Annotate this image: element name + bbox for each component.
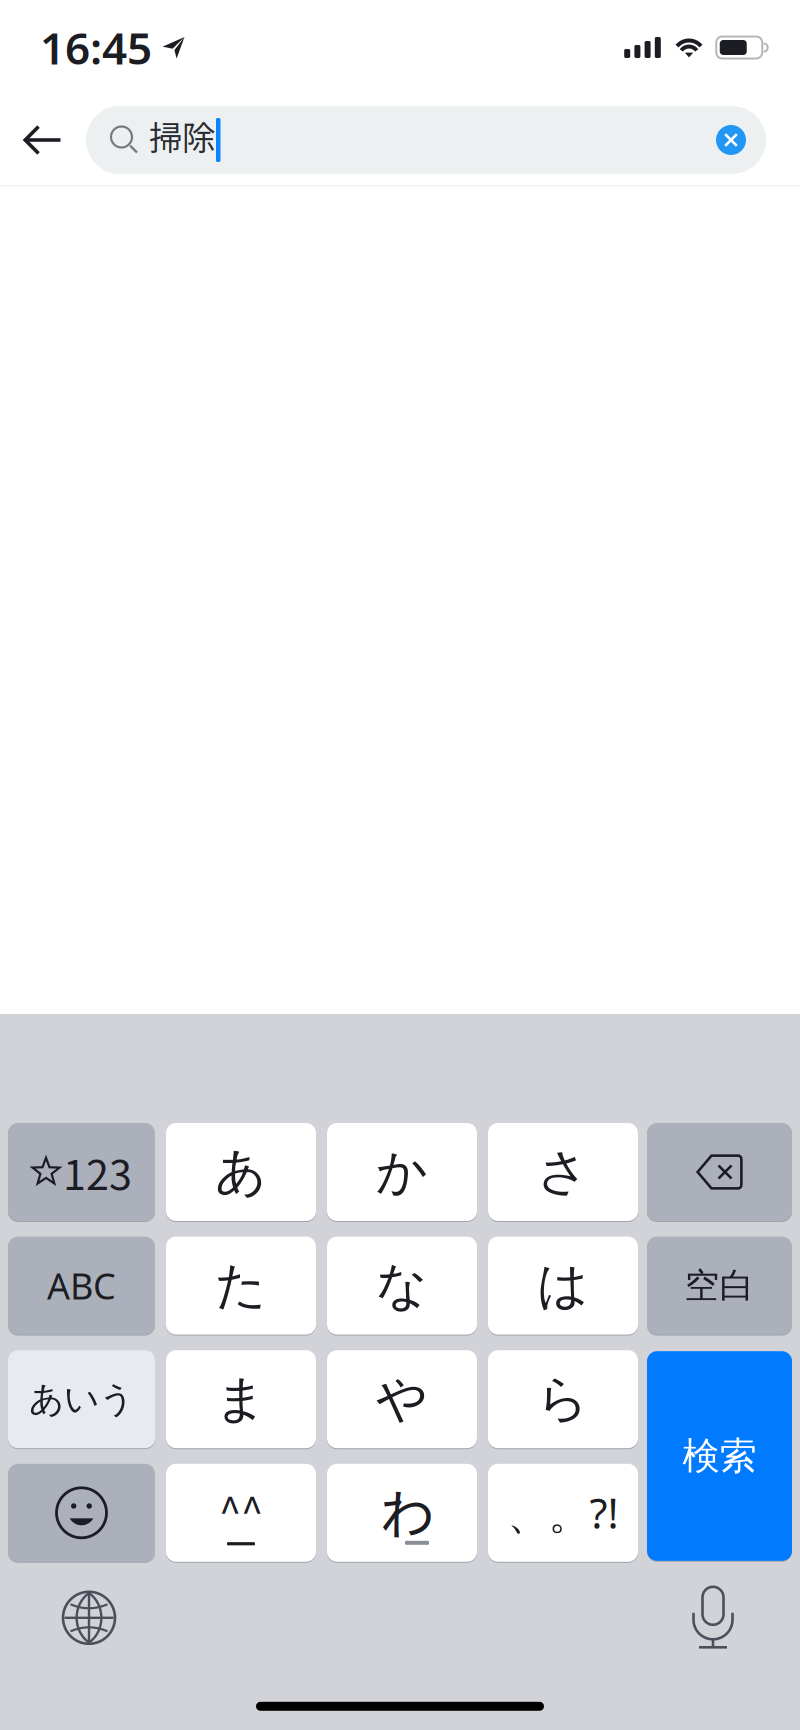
staticText: や: [376, 1367, 428, 1431]
button[interactable]: 空白: [647, 1236, 792, 1336]
staticText: ら: [537, 1367, 589, 1431]
staticText: 16:45: [40, 18, 152, 77]
button[interactable]: か: [327, 1122, 477, 1222]
button[interactable]: は: [488, 1236, 638, 1336]
button[interactable]: や: [327, 1349, 477, 1449]
staticText: あいう: [29, 1377, 134, 1421]
staticText: 123: [63, 1142, 132, 1202]
staticText: ABC: [47, 1261, 116, 1310]
button[interactable]: さ: [488, 1122, 638, 1222]
button[interactable]: Emoji: [8, 1463, 155, 1563]
button[interactable]: ら: [488, 1349, 638, 1449]
button[interactable]: Kaomoji: [166, 1463, 316, 1563]
button[interactable]: 検索: [647, 1350, 792, 1562]
button[interactable]: な: [327, 1236, 477, 1336]
staticText: 検索: [682, 1432, 756, 1479]
button[interactable]: 、。?!: [488, 1463, 638, 1563]
staticText: 、。?!: [507, 1485, 618, 1541]
staticText: わ: [380, 1472, 435, 1551]
staticText: た: [215, 1254, 267, 1317]
staticText: な: [376, 1254, 428, 1317]
staticText: 空白: [684, 1264, 754, 1307]
staticText: さ: [537, 1140, 589, 1204]
staticText: は: [537, 1254, 589, 1317]
button[interactable]: Delete: [647, 1122, 792, 1222]
button[interactable]: Clear text: [716, 125, 766, 155]
staticText: ^^: [219, 1480, 263, 1538]
button[interactable]: あいう: [8, 1349, 155, 1449]
button[interactable]: た: [166, 1236, 316, 1336]
staticText: か: [376, 1140, 428, 1204]
button[interactable]: あ: [166, 1122, 316, 1222]
staticText: 掃除: [149, 111, 215, 160]
staticText: ま: [215, 1367, 267, 1431]
button[interactable]: ま: [166, 1349, 316, 1449]
button[interactable]: Back: [12, 106, 86, 174]
button[interactable]: わ: [327, 1463, 477, 1563]
button[interactable]: Dictation: [663, 1573, 763, 1663]
staticText: あ: [215, 1140, 267, 1204]
button[interactable]: Next keyboard: [39, 1573, 139, 1663]
button[interactable]: Numbers and symbols: [8, 1122, 155, 1222]
button[interactable]: ABC: [8, 1236, 155, 1336]
